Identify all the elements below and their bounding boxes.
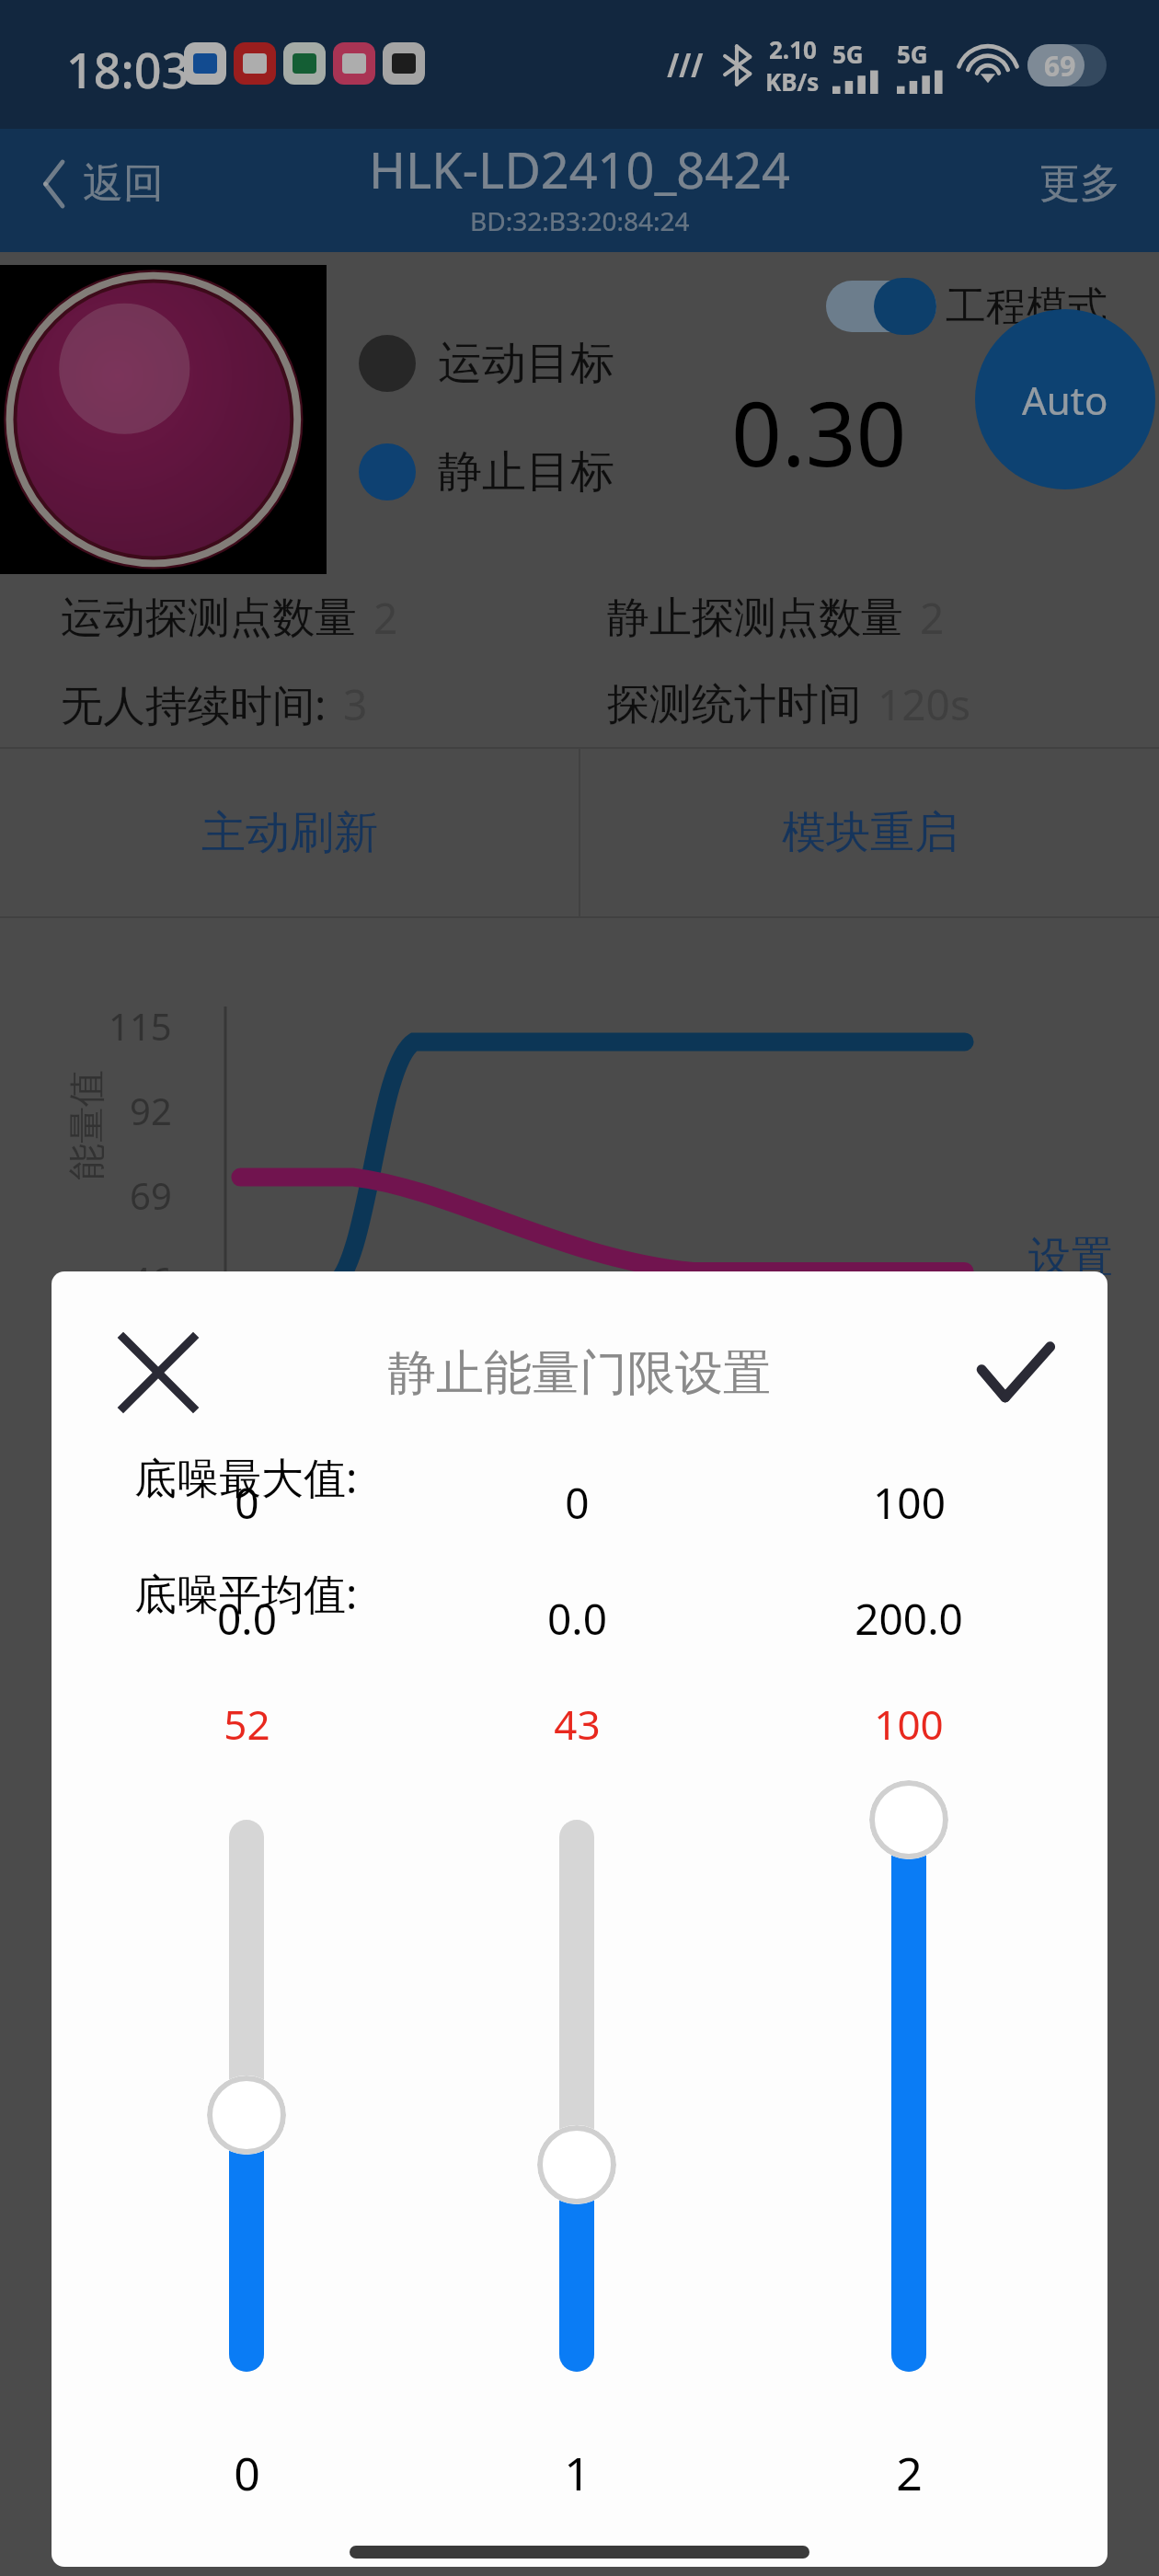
staticText: 5G bbox=[897, 38, 928, 70]
staticText: 52 bbox=[224, 1696, 270, 1752]
staticText: 主动刷新 bbox=[201, 805, 378, 860]
staticText: 静止能量门限设置 bbox=[388, 1343, 771, 1404]
button[interactable]: 能量门限滑块 bbox=[537, 1780, 616, 2411]
staticText: 100 bbox=[873, 1474, 946, 1532]
staticText: 设置 bbox=[1028, 1231, 1113, 1284]
staticText: 92 bbox=[130, 1086, 172, 1135]
staticText: 2 bbox=[920, 589, 945, 647]
staticText: 更多 bbox=[1039, 158, 1120, 209]
staticText: 能量值 bbox=[63, 1070, 109, 1180]
staticText: 无人持续时间: bbox=[61, 675, 327, 733]
button[interactable]: 工程模式 bbox=[826, 278, 1107, 335]
staticText: 23 bbox=[130, 1340, 172, 1389]
staticText: 43 bbox=[554, 1696, 601, 1752]
staticText: 18:03 bbox=[66, 37, 189, 102]
staticText: 运动探测点数量 bbox=[61, 592, 357, 645]
button[interactable]: 主动刷新 bbox=[0, 749, 579, 916]
staticText: 返回 bbox=[83, 158, 164, 209]
button[interactable]: 确认 bbox=[971, 1328, 1060, 1417]
button[interactable]: 模块重启 bbox=[580, 749, 1159, 916]
staticText: 底噪最大值: bbox=[134, 1448, 358, 1506]
staticText: 5G bbox=[832, 38, 864, 70]
button[interactable]: 关闭 bbox=[114, 1328, 202, 1417]
staticText: 2 bbox=[373, 589, 398, 647]
staticText: 工程模式 bbox=[946, 282, 1107, 332]
staticText: 模块重启 bbox=[782, 805, 958, 860]
button[interactable]: 更多 bbox=[1001, 144, 1159, 224]
staticText: 46 bbox=[130, 1255, 172, 1305]
staticText: 3 bbox=[343, 675, 368, 733]
staticText: 底噪平均值: bbox=[134, 1564, 358, 1622]
staticText: 0 bbox=[234, 2442, 260, 2504]
button[interactable]: Auto bbox=[975, 309, 1155, 489]
staticText: 0 bbox=[235, 1474, 259, 1532]
staticText: 0 bbox=[565, 1474, 590, 1532]
staticText: Auto bbox=[1022, 374, 1108, 426]
staticText: 69 bbox=[1044, 47, 1076, 85]
staticText: BD:32:B3:20:84:24 bbox=[470, 203, 690, 238]
staticText: 静止目标 bbox=[438, 444, 614, 500]
button[interactable]: 能量门限滑块 bbox=[207, 1780, 286, 2411]
staticText: 2 bbox=[896, 2442, 923, 2504]
staticText: 运动目标 bbox=[438, 336, 614, 391]
button[interactable]: 返回 bbox=[0, 145, 204, 222]
staticText: 探测统计时间 bbox=[607, 678, 861, 731]
staticText: 0.0 bbox=[217, 1590, 277, 1648]
staticText: 115 bbox=[109, 1001, 172, 1051]
staticText: KB/s bbox=[765, 65, 820, 98]
staticText: 静止探测点数量 bbox=[607, 592, 903, 645]
staticText: 200.0 bbox=[855, 1590, 963, 1648]
staticText: 2.10 bbox=[769, 33, 817, 65]
staticText: 120s bbox=[878, 675, 970, 733]
staticText: HLK-LD2410_8424 bbox=[369, 135, 790, 203]
staticText: 100 bbox=[874, 1696, 944, 1752]
staticText: 0.0 bbox=[547, 1590, 607, 1648]
staticText: 69 bbox=[130, 1170, 172, 1220]
button[interactable]: 能量门限滑块 bbox=[869, 1780, 948, 2411]
staticText: 1 bbox=[564, 2442, 591, 2504]
staticText: 0.30 bbox=[731, 372, 907, 492]
